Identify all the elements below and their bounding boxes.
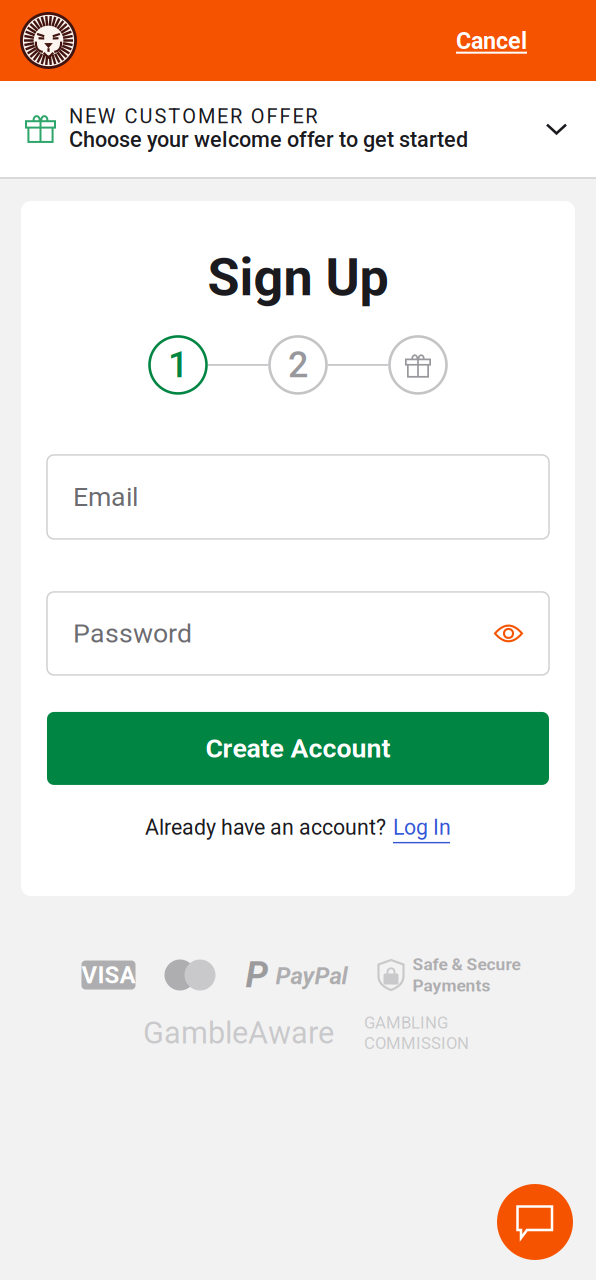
staticText: Create Account — [205, 733, 390, 764]
staticText: W — [98, 105, 116, 128]
button[interactable]: Log In — [393, 815, 451, 843]
staticText: P — [245, 954, 268, 996]
staticText: F — [279, 105, 290, 128]
staticText: 1 — [168, 344, 188, 386]
button[interactable]: LeoVegas home — [0, 0, 77, 81]
staticText: R — [305, 105, 317, 128]
staticText: Sign Up — [207, 247, 388, 308]
staticText: O — [251, 105, 265, 128]
staticText: Safe & Secure — [412, 954, 520, 974]
staticText: 2 — [288, 344, 308, 386]
staticText: Email — [73, 481, 138, 513]
staticText: Log In — [393, 815, 451, 840]
staticText: E — [217, 105, 228, 128]
button[interactable]: Cancel — [456, 13, 596, 68]
staticText: Payments — [412, 975, 490, 996]
staticText: PayPal — [275, 962, 347, 990]
staticText: C — [125, 105, 138, 128]
staticText: Cancel — [456, 27, 527, 55]
staticText: M — [198, 105, 215, 128]
staticText: E — [85, 105, 96, 128]
staticText: GAMBLING — [364, 1013, 448, 1032]
staticText: R — [230, 105, 242, 128]
staticText: GambleAware — [143, 1015, 334, 1051]
staticText: VISA — [81, 961, 135, 989]
button[interactable]: N — [0, 81, 596, 177]
staticText: COMMISSION — [364, 1033, 469, 1053]
staticText: Password — [73, 618, 192, 649]
button[interactable]: Chat support — [497, 1184, 573, 1260]
staticText: Already have an account? — [145, 815, 386, 840]
button[interactable]: Show password — [494, 609, 549, 658]
button[interactable]: Create Account — [47, 712, 549, 785]
staticText: T — [168, 105, 180, 128]
staticText: Choose your welcome offer to get started — [69, 127, 468, 152]
staticText: O — [182, 105, 196, 128]
staticText: U — [139, 105, 152, 128]
staticText: N — [69, 105, 83, 128]
staticText: E — [292, 105, 303, 128]
staticText: F — [267, 105, 278, 128]
staticText: S — [154, 105, 166, 128]
